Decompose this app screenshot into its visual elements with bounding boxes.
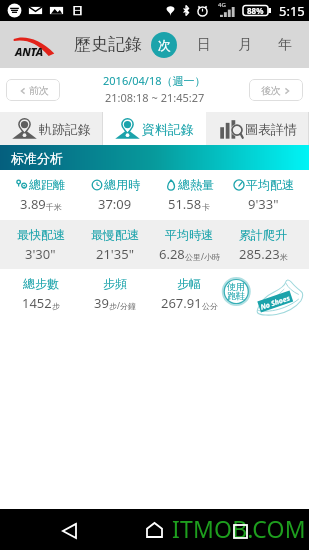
staticText: 2016/04/18（週一） — [103, 73, 206, 88]
button[interactable]: 軌跡記錄 — [0, 112, 103, 145]
staticText: 9'33" — [248, 195, 279, 213]
staticText: 總用時 — [104, 177, 140, 192]
staticText: 次 — [158, 37, 171, 53]
staticText: 軌跡記錄 — [39, 121, 91, 137]
staticText: 37:09 — [98, 195, 132, 213]
staticText: 米 — [280, 252, 288, 262]
staticText: 平均配速 — [246, 177, 294, 192]
button[interactable]: 次 — [151, 32, 177, 58]
staticText: 51.58 — [168, 195, 202, 213]
staticText: 累計爬升 — [239, 227, 287, 242]
staticText: 39 — [94, 294, 109, 312]
staticText: 标准分析 — [11, 150, 63, 166]
button[interactable]: 月 — [228, 21, 262, 68]
staticText: 公分 — [202, 301, 218, 311]
button[interactable]: Recent apps — [227, 518, 253, 544]
staticText: 6.28 — [159, 245, 185, 263]
staticText: 21:08:18 ~ 21:45:27 — [105, 90, 205, 105]
staticText: 3'30" — [25, 245, 56, 263]
staticText: 總距離 — [29, 177, 65, 192]
staticText: 3.89 — [20, 195, 46, 213]
staticText: 千米 — [46, 202, 62, 212]
staticText: 21'35" — [96, 245, 134, 263]
button[interactable]: 資料記錄 — [103, 112, 206, 145]
staticText: 步/分鐘 — [109, 300, 136, 311]
staticText: 總步數 — [23, 276, 59, 291]
staticText: ITMOB.COM — [172, 513, 306, 544]
button[interactable]: 圖表詳情 — [206, 112, 309, 145]
staticText: 4G — [218, 1, 226, 9]
staticText: 使用 跑鞋 — [227, 281, 245, 302]
button[interactable]: Home — [140, 516, 168, 544]
staticText: 平均時速 — [165, 227, 213, 242]
button[interactable]: Back — [55, 517, 83, 545]
staticText: ANTA — [15, 44, 43, 59]
staticText: 最慢配速 — [91, 227, 139, 242]
staticText: 卡 — [202, 202, 210, 212]
staticText: 圖表詳情 — [245, 121, 297, 137]
button[interactable]: 後次 — [249, 79, 303, 101]
staticText: 步 — [52, 301, 60, 311]
staticText: 前次 — [29, 84, 49, 97]
staticText: 5:15 — [279, 2, 305, 20]
button[interactable]: 前次 — [6, 79, 60, 101]
staticText: 1452 — [22, 294, 52, 312]
staticText: 88% — [247, 5, 264, 16]
staticText: 歷史記錄 — [74, 34, 142, 55]
staticText: 年 — [278, 36, 292, 54]
staticText: 285.23 — [239, 245, 280, 263]
staticText: No Shoes — [259, 293, 292, 313]
staticText: 公里/小時 — [185, 251, 220, 262]
staticText: 後次 — [261, 84, 281, 97]
staticText: 267.91 — [161, 294, 202, 312]
staticText: 最快配速 — [17, 227, 65, 242]
staticText: 步幅 — [177, 276, 201, 291]
staticText: 總熱量 — [178, 177, 214, 192]
staticText: 步頻 — [103, 276, 127, 291]
button[interactable]: 日 — [187, 21, 221, 68]
staticText: 資料記錄 — [142, 121, 194, 137]
staticText: 月 — [238, 36, 252, 54]
button[interactable]: 年 — [268, 21, 302, 68]
staticText: 日 — [197, 36, 211, 54]
